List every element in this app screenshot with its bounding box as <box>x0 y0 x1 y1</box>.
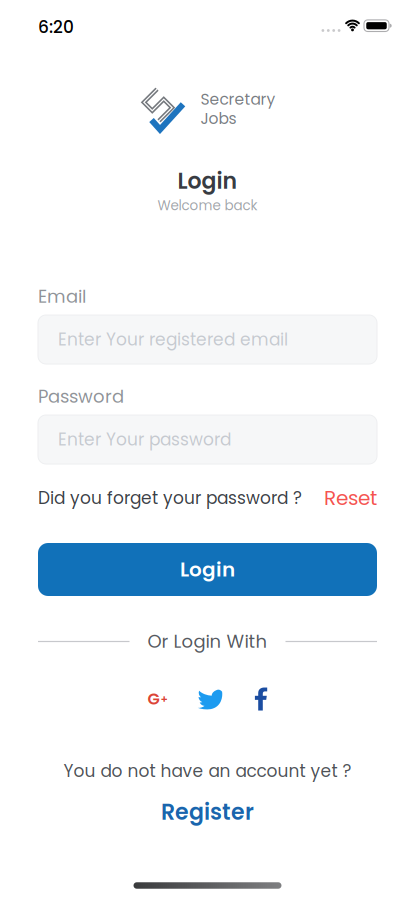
staticText: Register <box>161 797 254 827</box>
staticText: Or Login With <box>147 629 267 654</box>
staticText: Login <box>180 555 235 583</box>
staticText: G <box>147 688 159 710</box>
staticText: Enter Your password <box>58 428 231 451</box>
staticText: Did you forget your password ? <box>38 486 302 510</box>
staticText: Email <box>38 284 86 309</box>
staticText: You do not have an account yet ? <box>63 759 351 783</box>
button[interactable]: Reset <box>324 484 377 512</box>
button[interactable]: Enter Your registered email <box>38 315 377 364</box>
staticText: 6:20 <box>38 15 74 39</box>
button[interactable]: G <box>147 688 167 710</box>
staticText: Reset <box>324 484 377 512</box>
button[interactable]: Login <box>38 543 377 596</box>
staticText: Password <box>38 384 124 409</box>
staticText: + <box>160 691 167 707</box>
button[interactable]: Enter Your password <box>38 415 377 464</box>
button[interactable] <box>252 687 267 710</box>
staticText: Welcome back <box>157 196 257 215</box>
staticText: Enter Your registered email <box>58 328 288 351</box>
button[interactable] <box>197 688 222 709</box>
staticText: Login <box>177 166 237 196</box>
button[interactable]: Register <box>161 797 254 827</box>
staticText: Jobs <box>200 108 236 129</box>
staticText: Secretary <box>200 88 275 110</box>
